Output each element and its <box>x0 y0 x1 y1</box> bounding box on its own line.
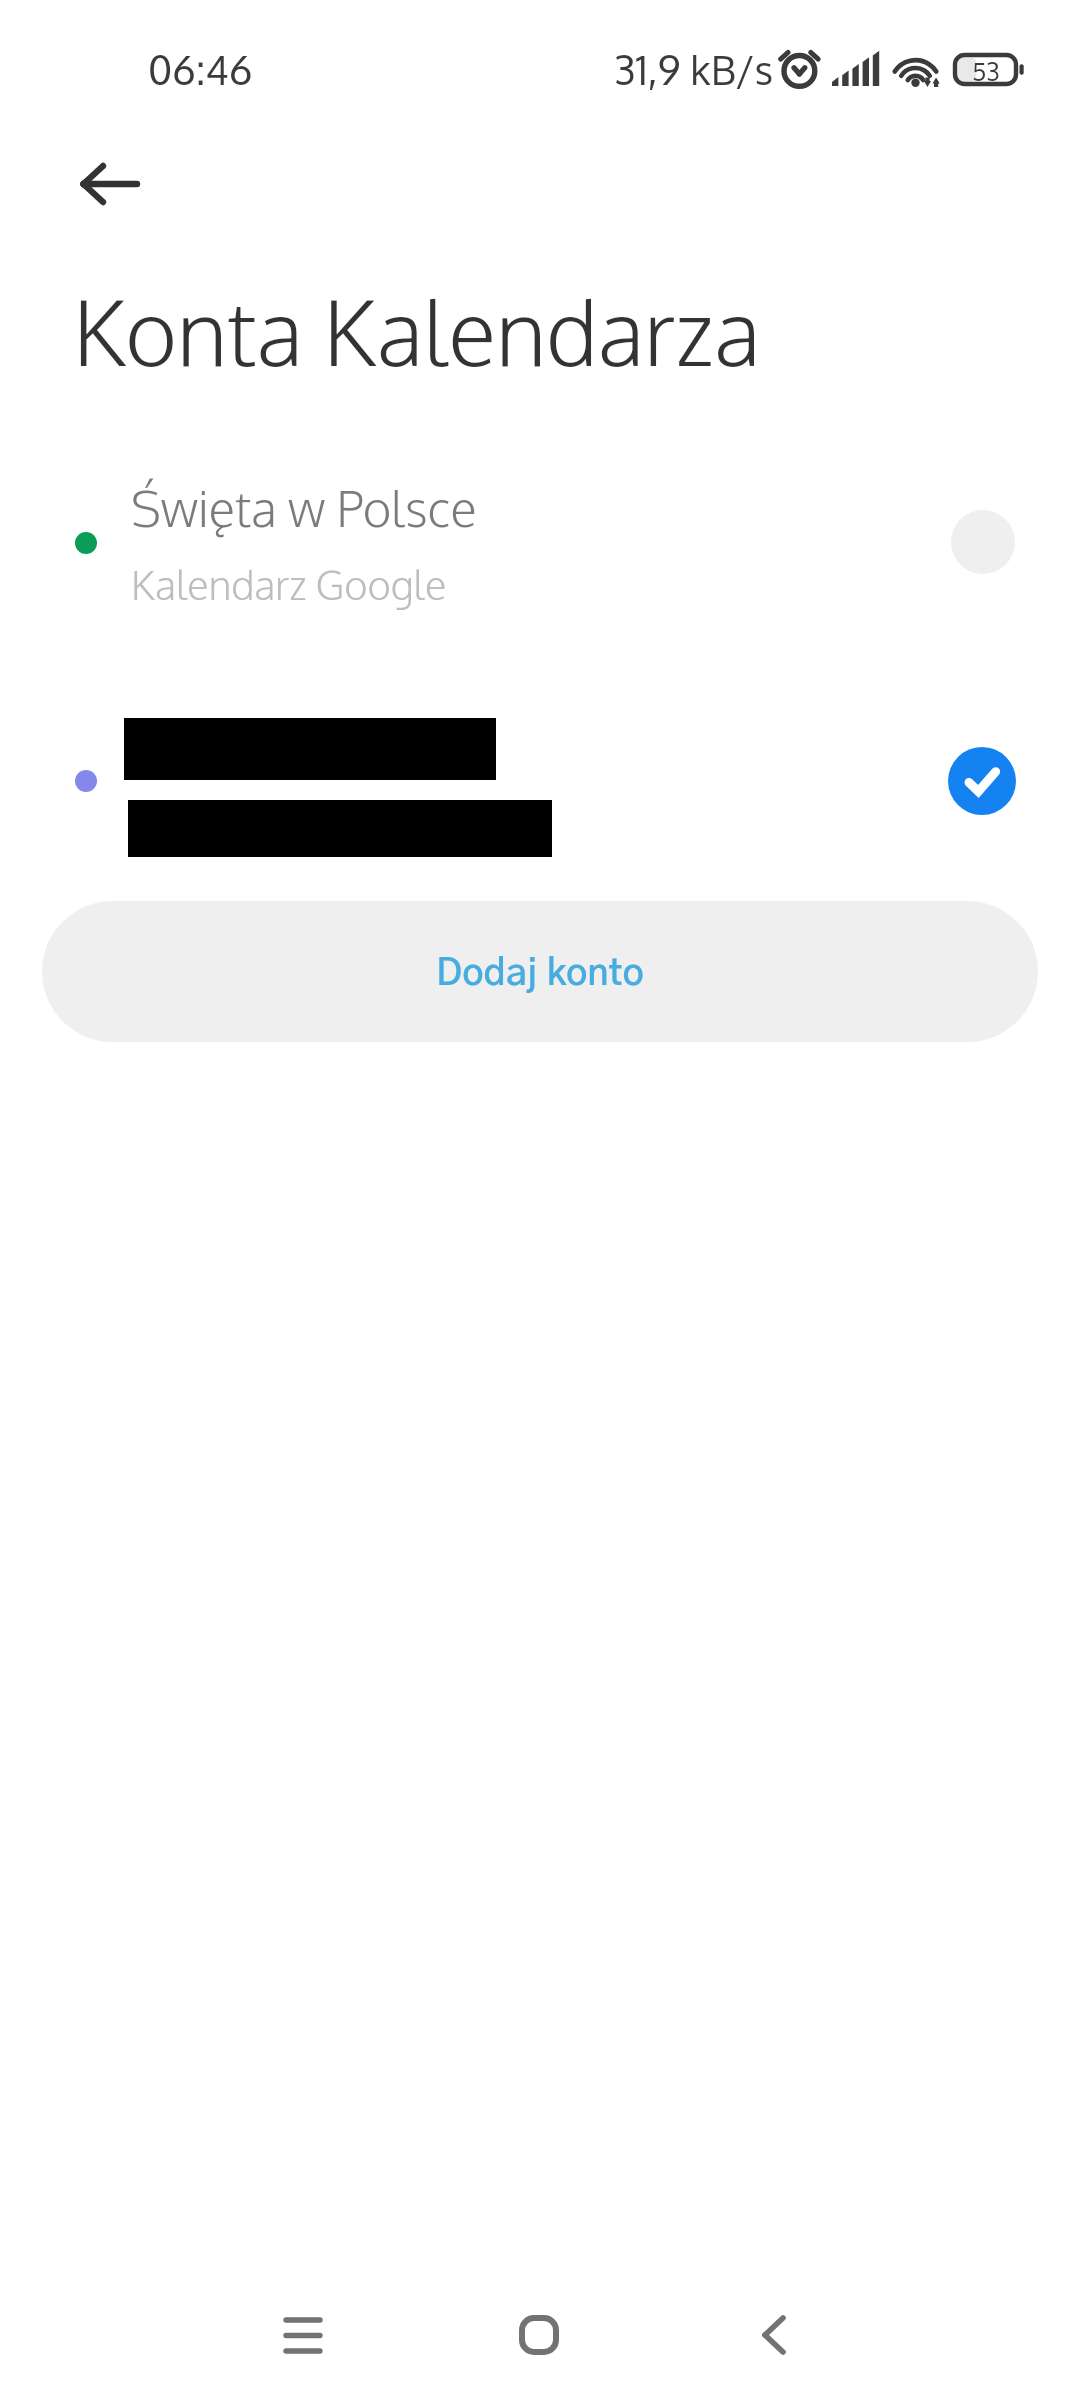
button[interactable]: Recent apps <box>243 2275 363 2395</box>
button[interactable]: Święta w Polsce <box>0 456 1080 632</box>
staticText: 31,9 kB/s <box>614 44 774 95</box>
button[interactable] <box>0 694 1080 870</box>
staticText: Święta w Polsce <box>131 477 477 539</box>
button[interactable]: Back <box>46 138 138 230</box>
staticText: Konta Kalendarza <box>73 275 761 387</box>
staticText: 53 <box>972 55 1000 87</box>
button[interactable]: Back <box>714 2275 834 2395</box>
button[interactable]: Home <box>479 2275 599 2395</box>
staticText: Dodaj konto <box>436 955 644 992</box>
button[interactable]: Dodaj konto <box>42 901 1038 1042</box>
staticText: 06:46 <box>148 44 253 95</box>
staticText: Kalendarz Google <box>131 559 447 610</box>
